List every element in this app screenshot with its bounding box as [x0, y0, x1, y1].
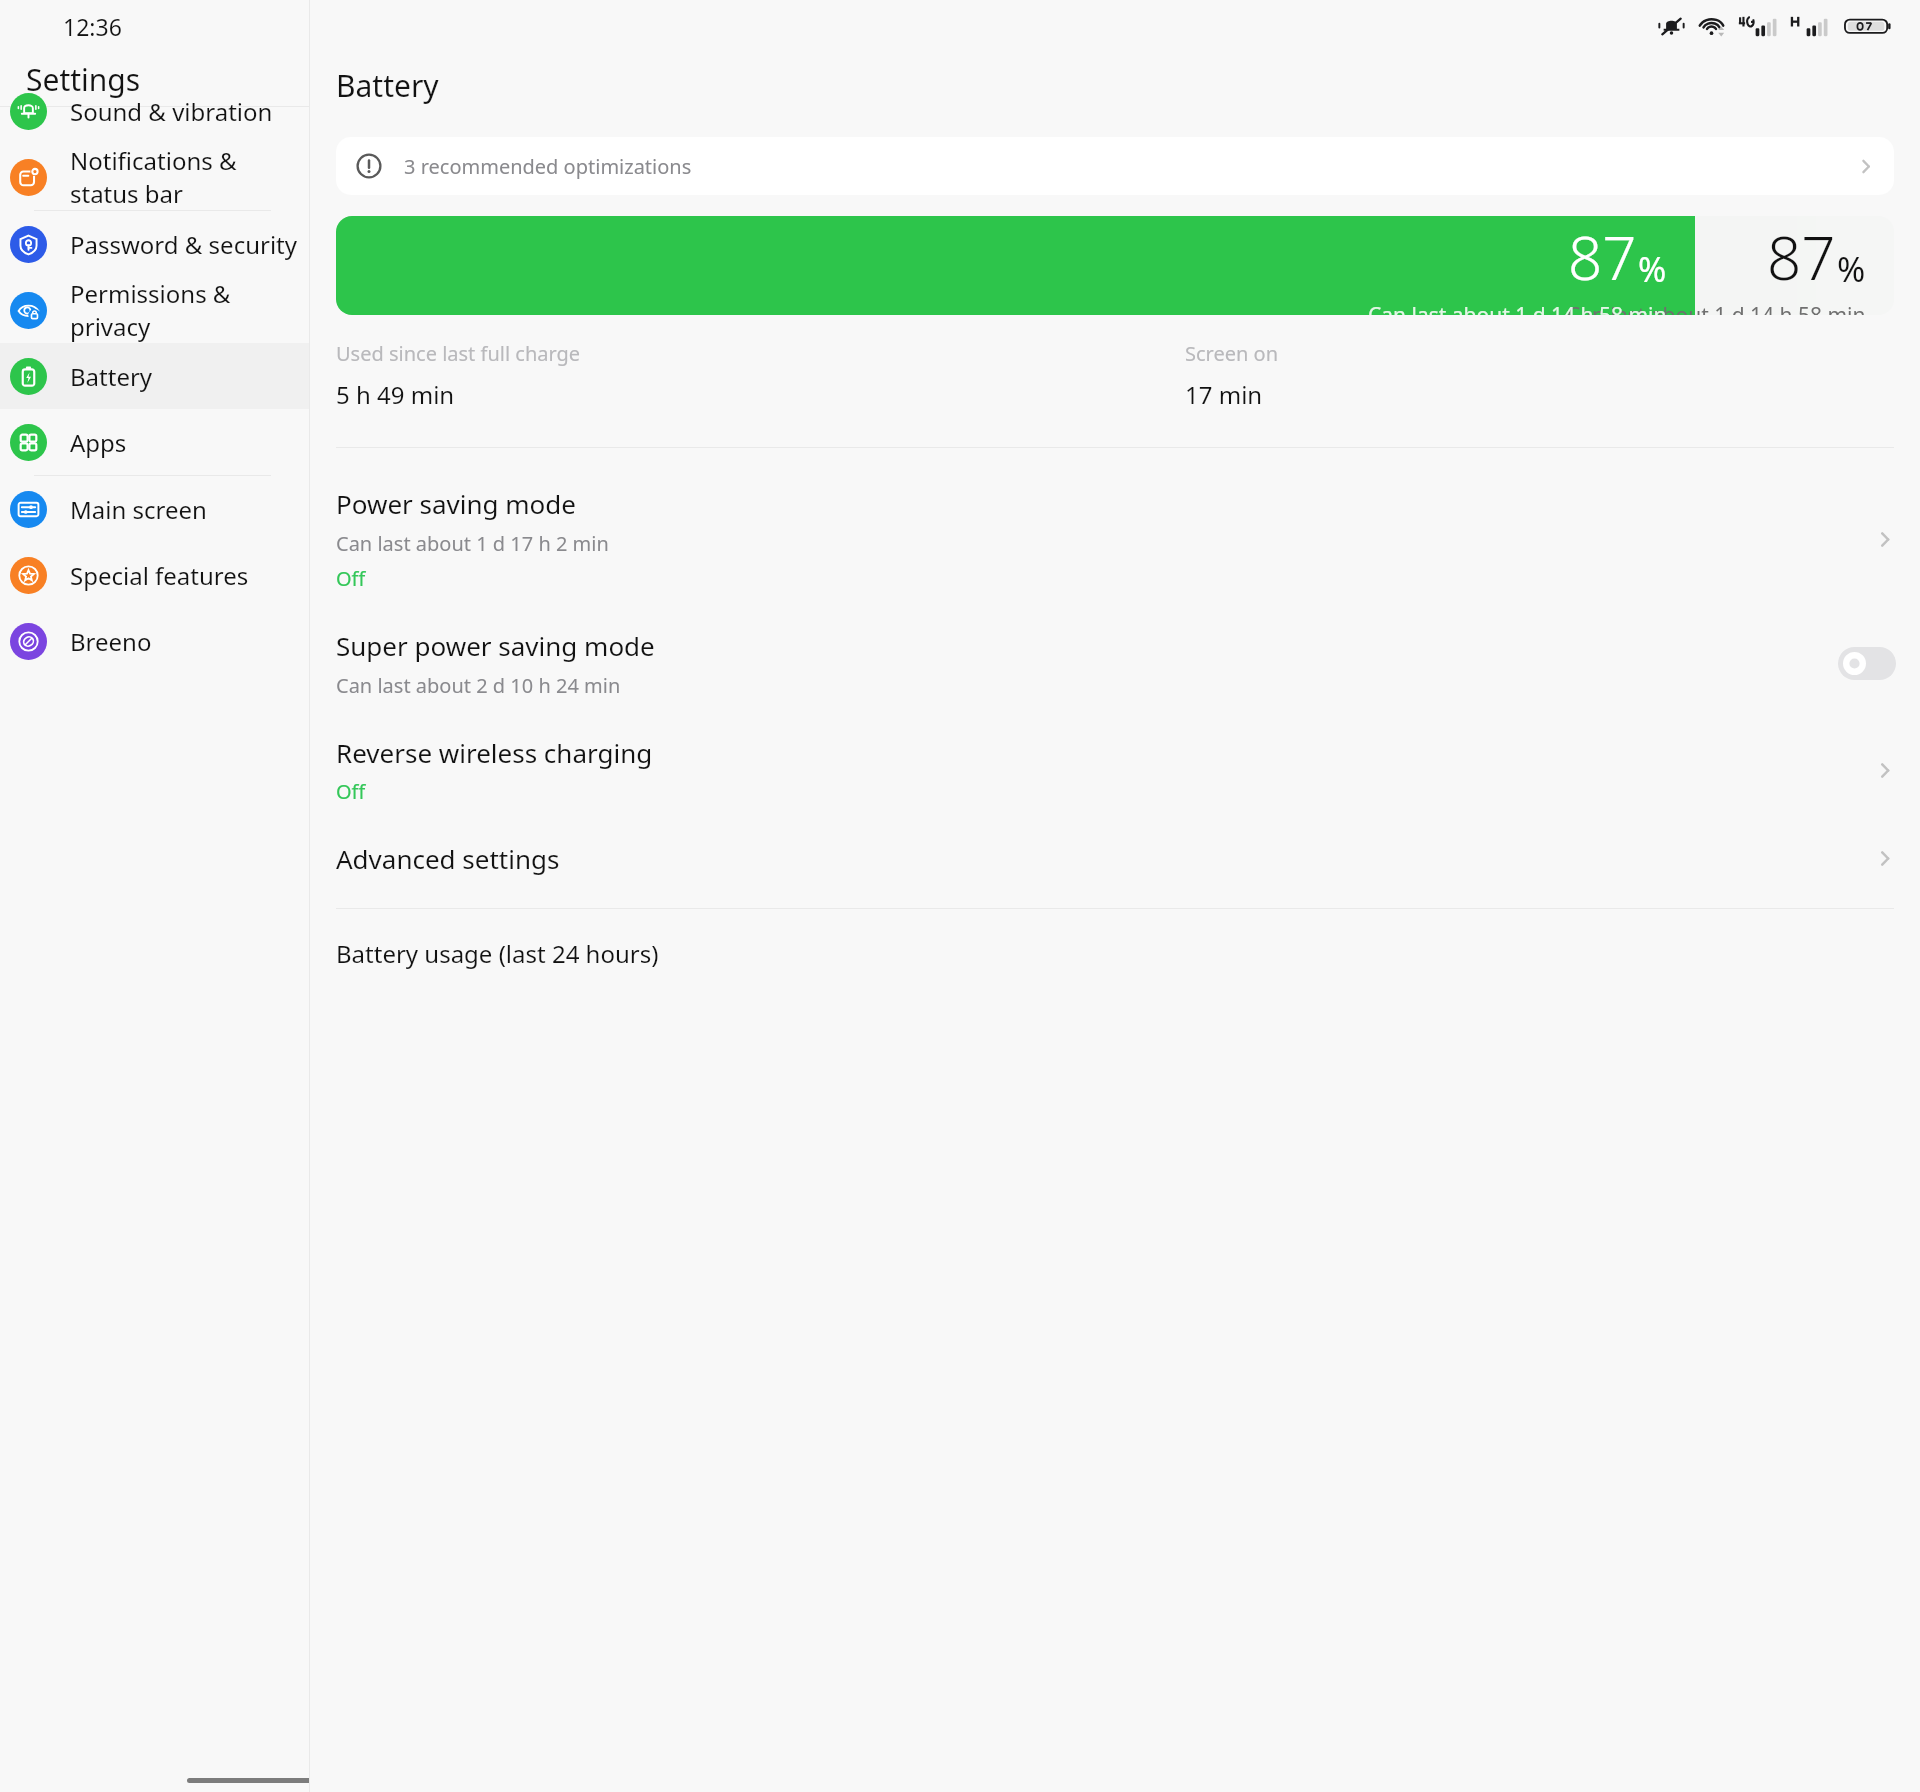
staticText: % — [1638, 246, 1667, 292]
button[interactable]: Power saving mode — [310, 470, 1920, 612]
staticText: Super power saving mode — [336, 628, 655, 663]
button[interactable]: Special features — [0, 542, 309, 608]
staticText: Can last about 1 d 17 h 2 min — [336, 530, 609, 557]
staticText: Used since last full charge — [336, 340, 581, 367]
button[interactable]: Advanced settings — [310, 825, 1920, 896]
staticText: Reverse wireless charging — [336, 735, 653, 770]
staticText: Off — [336, 565, 366, 592]
staticText: Settings — [26, 59, 141, 100]
staticText: Can last about 2 d 10 h 24 min — [336, 672, 621, 699]
staticText: % — [1837, 246, 1866, 292]
staticText: Sound & vibration — [70, 95, 273, 128]
button[interactable]: Battery — [0, 343, 309, 409]
staticText: Breeno — [70, 625, 152, 658]
staticText: Permissions & privacy — [70, 277, 309, 343]
button[interactable]: Super power saving mode toggle — [1838, 647, 1896, 680]
button[interactable]: 3 recommended optimizations — [336, 137, 1894, 195]
staticText: Special features — [70, 559, 249, 592]
button[interactable]: Apps — [0, 409, 309, 475]
staticText: Apps — [70, 426, 127, 459]
staticText: Battery — [336, 65, 439, 106]
staticText: Main screen — [70, 493, 207, 526]
staticText: 87 — [1568, 216, 1637, 298]
button[interactable]: Breeno — [0, 608, 309, 674]
button[interactable]: Main screen — [0, 476, 309, 542]
button[interactable]: 87 — [336, 216, 1894, 315]
button[interactable]: Super power saving mode — [310, 612, 1920, 719]
staticText: Password & security — [70, 228, 297, 261]
staticText: 17 min — [1185, 378, 1263, 411]
staticText: Can last about 1 d 14 h 58 min — [1567, 301, 1866, 315]
button[interactable]: Permissions & privacy — [0, 277, 309, 343]
staticText: Screen on — [1185, 340, 1279, 367]
button[interactable]: Reverse wireless charging — [310, 719, 1920, 825]
staticText: 3 recommended optimizations — [404, 153, 692, 180]
button[interactable]: Sound & vibration — [0, 107, 309, 144]
staticText: 5 h 49 min — [336, 378, 455, 411]
staticText: Can last about 1 d 14 h 58 min — [1368, 301, 1667, 315]
staticText: Off — [336, 778, 366, 805]
staticText: Battery usage (last 24 hours) — [336, 937, 659, 970]
staticText: Battery — [70, 360, 153, 393]
staticText: 87 — [1767, 216, 1836, 298]
staticText: Advanced settings — [336, 841, 560, 876]
button[interactable]: Notifications & status bar — [0, 144, 309, 210]
staticText: Notifications & status bar — [70, 144, 309, 210]
button[interactable]: Password & security — [0, 211, 309, 277]
staticText: 12:36 — [63, 11, 122, 42]
staticText: Power saving mode — [336, 486, 577, 521]
